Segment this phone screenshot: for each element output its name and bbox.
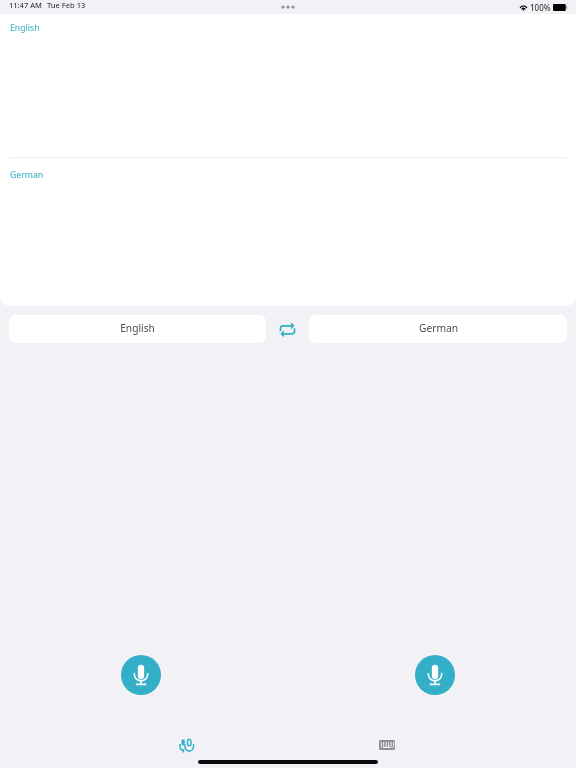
staticText: Tue Feb 13 <box>47 0 86 10</box>
button[interactable]: German <box>0 158 576 306</box>
staticText: English <box>120 321 155 335</box>
staticText: 11:47 AM <box>9 0 42 10</box>
button[interactable]: Keyboard <box>377 738 396 752</box>
staticText: German <box>10 169 44 181</box>
staticText: German <box>419 321 458 335</box>
button[interactable]: English <box>9 315 266 343</box>
button[interactable]: Microphone <box>415 655 455 695</box>
button[interactable]: English <box>0 14 576 157</box>
staticText: English <box>10 22 40 34</box>
button[interactable] <box>266 315 309 343</box>
button[interactable]: German <box>309 315 567 343</box>
button[interactable]: Microphone <box>121 655 161 695</box>
button[interactable]: Conversation mode <box>179 737 195 753</box>
staticText: 100% <box>530 2 551 13</box>
